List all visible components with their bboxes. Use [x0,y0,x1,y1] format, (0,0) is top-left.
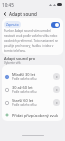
staticText: 10:45 [2,2,14,8]
staticText: Přidat přizpůsobený zvuk [12,113,59,118]
button[interactable]: Mladší 30 let [2,70,63,83]
staticText: Mladší 30 let [12,72,36,77]
button[interactable]: Play sample [53,99,60,106]
staticText: Podle vašeho věku [12,90,37,94]
button[interactable]: Toggle adapt sound [51,22,60,28]
button[interactable]: Zapnuto [4,21,21,28]
staticText: Starší 60 let [12,98,34,103]
button[interactable]: Back [1,10,9,18]
button[interactable]: Přidat přizpůsobený zvuk [2,109,63,121]
staticText: Zapnuto [6,23,19,27]
staticText: 30 až 60 let [12,85,33,90]
button[interactable]: 30 až 60 let [2,83,63,96]
button[interactable]: Play sample [53,86,60,93]
staticText: Adapt sound [9,11,37,17]
button[interactable]: Play sample [53,73,60,80]
staticText: Vyberte věk [4,61,21,65]
staticText: Adapt sound pro [4,56,36,61]
staticText: Podle vašeho věku [12,77,37,81]
button[interactable]: Starší 60 let [2,96,63,109]
staticText: Podle vašeho věku [12,103,37,107]
staticText: Funkce Adapt sound vám umožní nastavit z… [4,29,60,53]
